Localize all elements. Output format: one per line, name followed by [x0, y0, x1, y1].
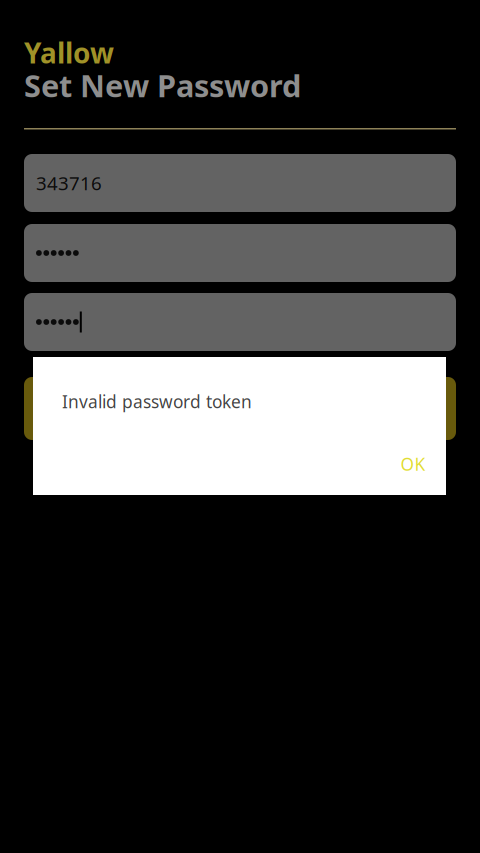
button[interactable]: Verification code [24, 154, 456, 212]
staticText: Invalid password token [62, 390, 252, 413]
staticText: Yallow [24, 34, 114, 71]
staticText: Set New Password [24, 65, 301, 106]
button[interactable]: OK [390, 448, 436, 480]
button[interactable]: Confirm new password [24, 293, 456, 351]
staticText: Change Password [152, 395, 327, 422]
staticText: 343716 [36, 171, 102, 195]
button[interactable]: Change Password [24, 377, 456, 440]
staticText: OK [400, 452, 425, 475]
button[interactable]: New password [24, 224, 456, 282]
